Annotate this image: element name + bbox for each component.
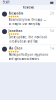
staticText: and syncs across devices. — [9, 57, 40, 61]
staticText: 2d — [50, 12, 54, 15]
staticText: 1w — [50, 47, 54, 50]
staticText: Mia Chen — [9, 47, 23, 50]
staticText: Works perfectly on my phone — [9, 53, 49, 56]
staticText: Jonathan — [9, 29, 23, 33]
staticText: ▮▮▮ — [50, 1, 53, 4]
staticText: 5d — [50, 29, 54, 33]
staticText: Absolutely love this app — — [9, 18, 47, 21]
staticText: so easy to use every day. — [9, 22, 41, 26]
staticText: 9:41 — [3, 1, 10, 4]
staticText: is really clean and fast. — [9, 40, 39, 43]
staticText: Great update, the new look — [9, 35, 47, 39]
staticText: Alexandra — [9, 12, 24, 15]
staticText: Reviews — [22, 6, 33, 9]
